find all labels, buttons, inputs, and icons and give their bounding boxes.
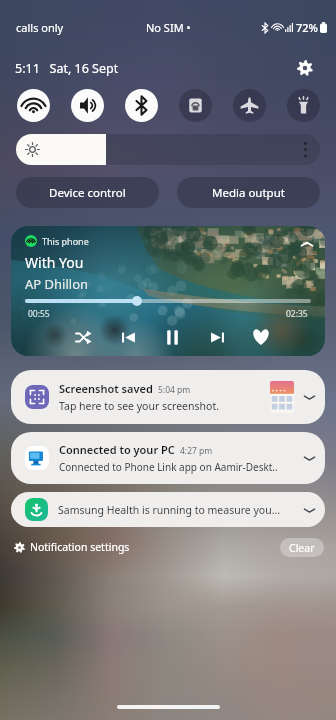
staticText: Samsung Health is running to measure you… bbox=[58, 503, 300, 517]
button[interactable]: Favourite bbox=[247, 323, 275, 351]
button[interactable]: SIM card lock bbox=[179, 89, 212, 122]
staticText: This phone bbox=[42, 235, 89, 247]
button[interactable]: Media output bbox=[177, 177, 320, 208]
button[interactable]: Pause bbox=[158, 323, 186, 351]
button[interactable]: Flashlight bbox=[287, 89, 320, 122]
button[interactable]: Bluetooth bbox=[125, 89, 158, 122]
staticText: Tap here to see your screenshot. bbox=[59, 399, 220, 413]
button[interactable]: Expand notification bbox=[300, 449, 318, 467]
staticText: 02:35 bbox=[286, 308, 308, 320]
staticText: 5:11 Sat, 16 Sept bbox=[15, 60, 119, 77]
button[interactable]: Sound bbox=[71, 89, 104, 122]
staticText: 4:27 pm bbox=[180, 445, 213, 457]
button[interactable]: Next track bbox=[203, 323, 231, 351]
button[interactable]: Collapse media bbox=[298, 235, 316, 253]
staticText: Media output bbox=[212, 185, 285, 201]
staticText: No SIM • bbox=[146, 20, 191, 35]
button[interactable]: Expand notification bbox=[300, 501, 318, 519]
staticText: AP Dhillon bbox=[25, 275, 89, 293]
button[interactable]: Brightness bbox=[16, 134, 320, 165]
staticText: Connected to your PC bbox=[59, 442, 175, 457]
staticText: Notification settings bbox=[30, 540, 130, 554]
staticText: 72% bbox=[296, 20, 318, 35]
button[interactable]: Samsung Health is running to measure you… bbox=[11, 492, 325, 527]
button[interactable]: Notification settings bbox=[12, 537, 132, 557]
button[interactable]: Previous track bbox=[114, 323, 142, 351]
button[interactable]: Shuffle bbox=[69, 323, 97, 351]
button[interactable]: Connected to your PC bbox=[11, 432, 325, 484]
staticText: Screenshot saved bbox=[59, 381, 153, 396]
staticText: Clear bbox=[289, 541, 315, 555]
button[interactable]: Wi-Fi bbox=[17, 89, 50, 122]
button[interactable]: Screenshot saved bbox=[11, 370, 325, 424]
staticText: 00:55 bbox=[28, 308, 50, 320]
button[interactable]: Airplane mode bbox=[233, 89, 266, 122]
staticText: calls only bbox=[16, 20, 64, 35]
staticText: Connected to Phone Link app on Aamir-Des… bbox=[59, 460, 278, 474]
button[interactable]: Clear bbox=[280, 538, 324, 557]
button[interactable]: Expand notification bbox=[300, 388, 318, 406]
staticText: 5:04 pm bbox=[158, 384, 191, 396]
button[interactable]: Settings bbox=[293, 56, 317, 80]
staticText: With You bbox=[25, 253, 84, 272]
button[interactable]: Device control bbox=[16, 177, 159, 208]
staticText: Device control bbox=[49, 185, 126, 201]
